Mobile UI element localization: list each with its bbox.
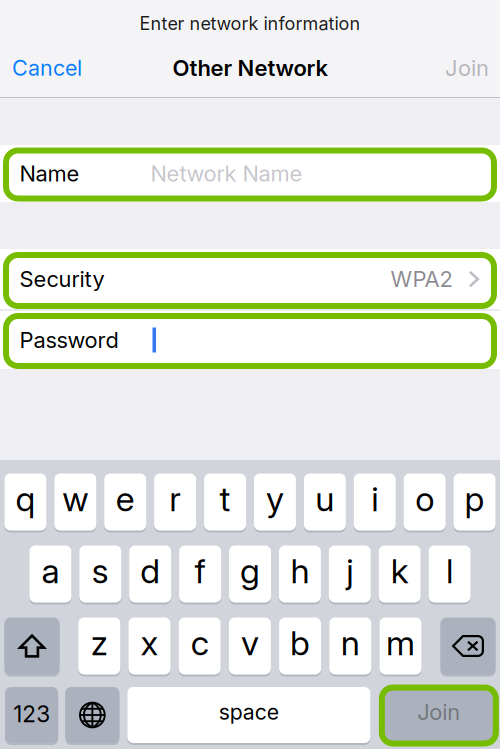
button[interactable]: b	[279, 617, 321, 676]
button[interactable]: d	[129, 545, 171, 604]
staticText: z	[91, 622, 108, 663]
button[interactable]: r	[154, 473, 196, 532]
button[interactable]: Join	[383, 686, 495, 744]
button[interactable]: Delete	[440, 617, 495, 676]
staticText: n	[341, 622, 360, 663]
staticText: q	[15, 478, 35, 519]
staticText: Name	[19, 160, 79, 187]
staticText: e	[116, 478, 135, 519]
button[interactable]: Cancel	[0, 45, 112, 91]
button[interactable]: o	[404, 473, 446, 532]
staticText: u	[315, 478, 334, 519]
button[interactable]: n	[329, 617, 371, 676]
button[interactable]: i	[354, 473, 396, 532]
button[interactable]: l	[429, 545, 471, 604]
staticText: a	[41, 550, 59, 591]
button[interactable]: z	[78, 617, 120, 676]
button[interactable]: space	[127, 686, 370, 744]
button[interactable]: s	[79, 545, 121, 604]
staticText: Enter network information	[139, 13, 360, 34]
button[interactable]: y	[254, 473, 296, 532]
button[interactable]: Shift	[4, 617, 59, 676]
staticText: h	[290, 550, 309, 591]
button[interactable]: j	[329, 545, 371, 604]
staticText: WPA2	[390, 266, 452, 292]
button[interactable]: c	[179, 617, 221, 676]
staticText: m	[386, 622, 415, 663]
button[interactable]: t	[204, 473, 246, 532]
button[interactable]: Switch keyboard	[65, 686, 119, 744]
staticText: Security	[19, 266, 104, 292]
staticText: r	[169, 478, 181, 519]
staticText: f	[195, 550, 206, 591]
staticText: k	[391, 550, 409, 591]
staticText: g	[240, 550, 260, 591]
button[interactable]: g	[229, 545, 271, 604]
button[interactable]: 123	[5, 686, 58, 744]
button[interactable]: f	[179, 545, 221, 604]
button[interactable]: w	[54, 473, 96, 532]
staticText: l	[446, 550, 453, 591]
button[interactable]: q	[4, 473, 46, 532]
staticText: Password	[19, 327, 118, 353]
button[interactable]: v	[229, 617, 271, 676]
button[interactable]: h	[279, 545, 321, 604]
staticText: 123	[13, 700, 50, 728]
staticText: space	[219, 699, 279, 725]
button[interactable]: p	[453, 473, 495, 532]
staticText: Cancel	[12, 55, 82, 81]
staticText: i	[371, 478, 378, 519]
staticText: y	[266, 478, 284, 519]
staticText: Network Name	[150, 160, 302, 187]
staticText: Other Network	[172, 55, 328, 81]
button[interactable]: k	[379, 545, 421, 604]
staticText: t	[219, 478, 230, 519]
button[interactable]: a	[29, 545, 71, 604]
staticText: d	[140, 550, 160, 591]
staticText: p	[464, 478, 484, 519]
staticText: c	[191, 622, 209, 663]
staticText: s	[92, 550, 109, 591]
button[interactable]: m	[379, 617, 421, 676]
staticText: x	[140, 622, 158, 663]
staticText: Join	[417, 699, 460, 725]
staticText: o	[415, 478, 434, 519]
staticText: Join	[445, 55, 489, 81]
staticText: j	[346, 550, 353, 591]
staticText: w	[62, 478, 88, 519]
button[interactable]: e	[104, 473, 146, 532]
staticText: b	[290, 622, 310, 663]
button[interactable]: Join	[389, 45, 500, 91]
button[interactable]: u	[304, 473, 346, 532]
staticText: v	[241, 622, 259, 663]
button[interactable]: x	[128, 617, 170, 676]
